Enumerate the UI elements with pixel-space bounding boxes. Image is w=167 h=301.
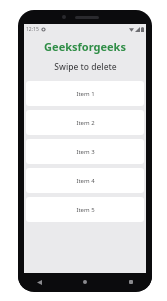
button[interactable]: Recent apps xyxy=(124,275,138,289)
staticText: Item 5 xyxy=(76,206,95,214)
staticText: Swipe to delete xyxy=(54,61,117,73)
button[interactable]: Item 4 xyxy=(26,168,144,193)
staticText: 12:15 xyxy=(26,26,39,33)
staticText: Item 3 xyxy=(76,148,95,156)
button[interactable]: Item 3 xyxy=(26,139,144,164)
button[interactable]: Item 5 xyxy=(26,197,144,222)
button[interactable]: Item 1 xyxy=(26,81,144,106)
button[interactable]: Home xyxy=(78,275,92,289)
staticText: Item 4 xyxy=(76,177,95,185)
staticText: Item 2 xyxy=(76,119,95,127)
button[interactable]: Item 2 xyxy=(26,110,144,135)
button[interactable]: Back xyxy=(32,275,46,289)
staticText: Item 1 xyxy=(76,90,95,98)
staticText: Geeksforgeeks xyxy=(44,39,126,54)
